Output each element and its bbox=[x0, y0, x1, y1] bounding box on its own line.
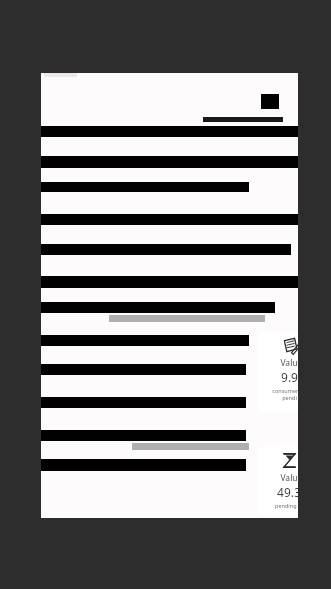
button[interactable]: List item 7 bbox=[41, 302, 301, 335]
button[interactable]: List item 1 bbox=[41, 126, 301, 156]
button[interactable]: List item 12 bbox=[41, 459, 301, 493]
button[interactable]: Header bbox=[41, 81, 301, 126]
button[interactable]: List item 9 bbox=[41, 364, 301, 397]
button[interactable]: List item 11 bbox=[41, 430, 301, 459]
staticText: pending co bbox=[275, 502, 304, 509]
button[interactable]: List item 10 bbox=[41, 397, 301, 430]
staticText: 49.3 bbox=[277, 484, 301, 500]
button[interactable]: Value 49.3 pending bbox=[258, 447, 320, 515]
button[interactable]: List item 5 bbox=[41, 244, 301, 276]
button[interactable]: List item 3 bbox=[41, 182, 301, 214]
button[interactable]: List item 4 bbox=[41, 214, 301, 244]
staticText: Valu bbox=[280, 357, 298, 369]
button[interactable]: List item 2 bbox=[41, 156, 301, 182]
button[interactable]: Value 9.9 consumer pending bbox=[258, 332, 320, 412]
staticText: pendi bbox=[282, 394, 297, 401]
staticText: consumer co bbox=[272, 387, 306, 394]
button[interactable]: List item 6 bbox=[41, 276, 301, 302]
staticText: Valu bbox=[280, 472, 298, 484]
button[interactable]: List item 8 bbox=[41, 335, 301, 364]
staticText: 9.9 bbox=[281, 369, 298, 385]
